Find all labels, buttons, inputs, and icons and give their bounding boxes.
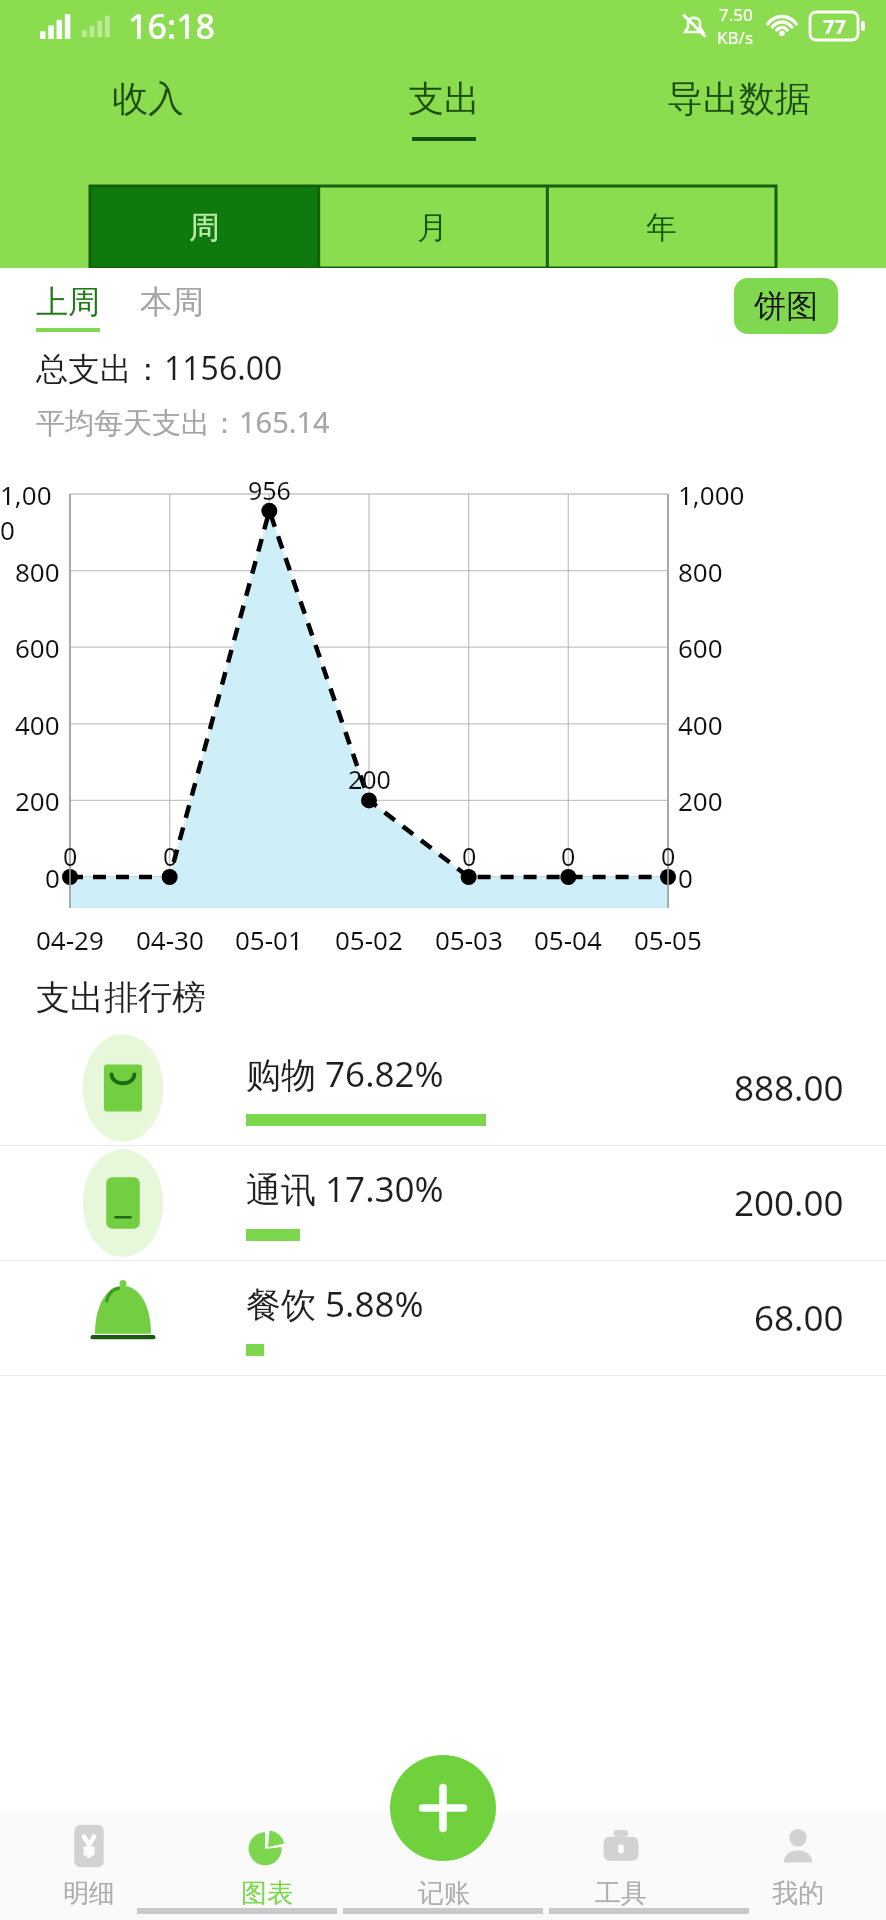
staticText: 800 [15, 554, 60, 589]
staticText: 7.50 [719, 3, 753, 26]
button[interactable]: 年 [547, 186, 776, 268]
staticText: 工具 [595, 1877, 647, 1910]
staticText: 0 [678, 860, 693, 895]
staticText: 04-29 [36, 922, 104, 957]
staticText: 05-02 [335, 922, 403, 957]
staticText: 0 [45, 860, 60, 895]
staticText: 购物 76.82% [246, 1050, 444, 1098]
button[interactable]: 明细 [0, 1812, 178, 1920]
staticText: 68.00 [754, 1294, 844, 1342]
button[interactable]: 饼图 [734, 278, 838, 334]
staticText: 0 [661, 839, 676, 873]
button[interactable]: 导出数据 [591, 76, 886, 137]
button[interactable]: 周 [90, 186, 318, 268]
staticText: 05-03 [435, 922, 503, 957]
button[interactable]: 通讯 17.30% [0, 1146, 886, 1260]
button[interactable]: 支出 [296, 76, 591, 141]
button[interactable]: 工具 [532, 1812, 709, 1920]
staticText: 1,000 [678, 477, 745, 512]
staticText: 明细 [63, 1877, 115, 1910]
button[interactable]: 本周 [140, 282, 204, 322]
staticText: 记账 [418, 1877, 470, 1910]
staticText: KB/s [717, 26, 754, 49]
staticText: 0 [462, 839, 477, 873]
staticText: 总支出：1156.00 [36, 346, 283, 390]
staticText: 餐饮 5.88% [246, 1280, 424, 1328]
staticText: 600 [678, 630, 723, 665]
button[interactable]: 餐饮 5.88% [0, 1261, 886, 1375]
staticText: 0 [163, 839, 178, 873]
staticText: 400 [15, 707, 60, 742]
staticText: 1,000 [0, 477, 60, 547]
staticText: 导出数据 [667, 76, 811, 121]
button[interactable]: 购物 76.82% [0, 1031, 886, 1145]
button[interactable]: 图表 [178, 1812, 355, 1920]
button[interactable]: 我的 [709, 1812, 886, 1920]
button[interactable]: 记账 [355, 1812, 532, 1920]
staticText: 05-05 [634, 922, 702, 957]
staticText: 16:18 [128, 3, 216, 49]
staticText: 通讯 17.30% [246, 1165, 444, 1213]
staticText: 77 [823, 13, 846, 40]
button[interactable]: 月 [318, 186, 547, 268]
staticText: 800 [678, 554, 723, 589]
staticText: 支出排行榜 [36, 976, 206, 1019]
staticText: 饼图 [754, 286, 818, 326]
staticText: 平均每天支出：165.14 [36, 402, 330, 442]
staticText: 200 [348, 762, 391, 796]
staticText: 400 [678, 707, 723, 742]
staticText: 04-30 [136, 922, 204, 957]
staticText: 收入 [112, 76, 184, 121]
staticText: 05-04 [534, 922, 602, 957]
staticText: 图表 [241, 1877, 293, 1910]
button[interactable]: 上周 [36, 282, 100, 332]
staticText: 600 [15, 630, 60, 665]
staticText: 我的 [772, 1877, 824, 1910]
staticText: 上周 [36, 282, 100, 322]
staticText: 周 [189, 208, 220, 247]
staticText: 年 [646, 208, 677, 247]
staticText: 本周 [140, 282, 204, 322]
staticText: 0 [561, 839, 576, 873]
staticText: 05-01 [235, 922, 303, 957]
staticText: 200 [15, 783, 60, 818]
button[interactable]: 记账 添加 [390, 1755, 496, 1861]
staticText: 956 [248, 473, 291, 507]
button[interactable]: 收入 [0, 76, 296, 137]
staticText: 200.00 [734, 1179, 844, 1227]
staticText: 0 [63, 839, 78, 873]
staticText: 支出 [408, 76, 480, 121]
staticText: 月 [417, 208, 448, 247]
staticText: 888.00 [734, 1064, 844, 1112]
staticText: 200 [678, 783, 723, 818]
